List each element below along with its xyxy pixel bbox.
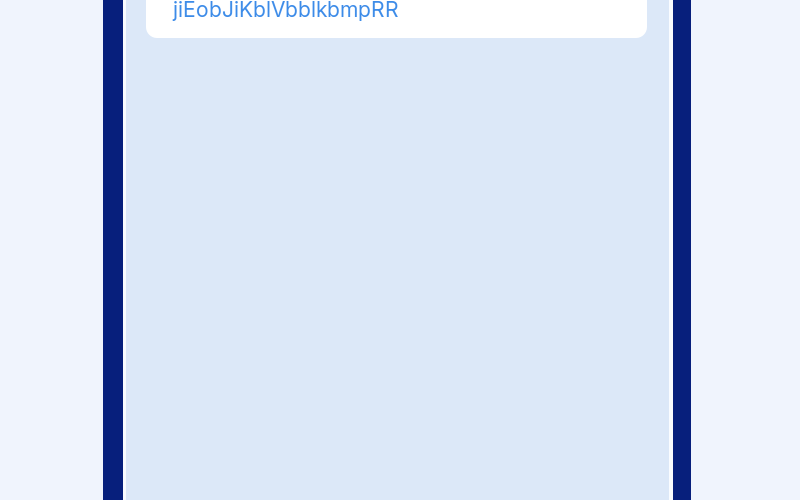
- button[interactable]: jiEobJiKblVbblkbmpRR: [146, 0, 647, 38]
- staticText: jiEobJiKblVbblkbmpRR: [173, 0, 399, 22]
